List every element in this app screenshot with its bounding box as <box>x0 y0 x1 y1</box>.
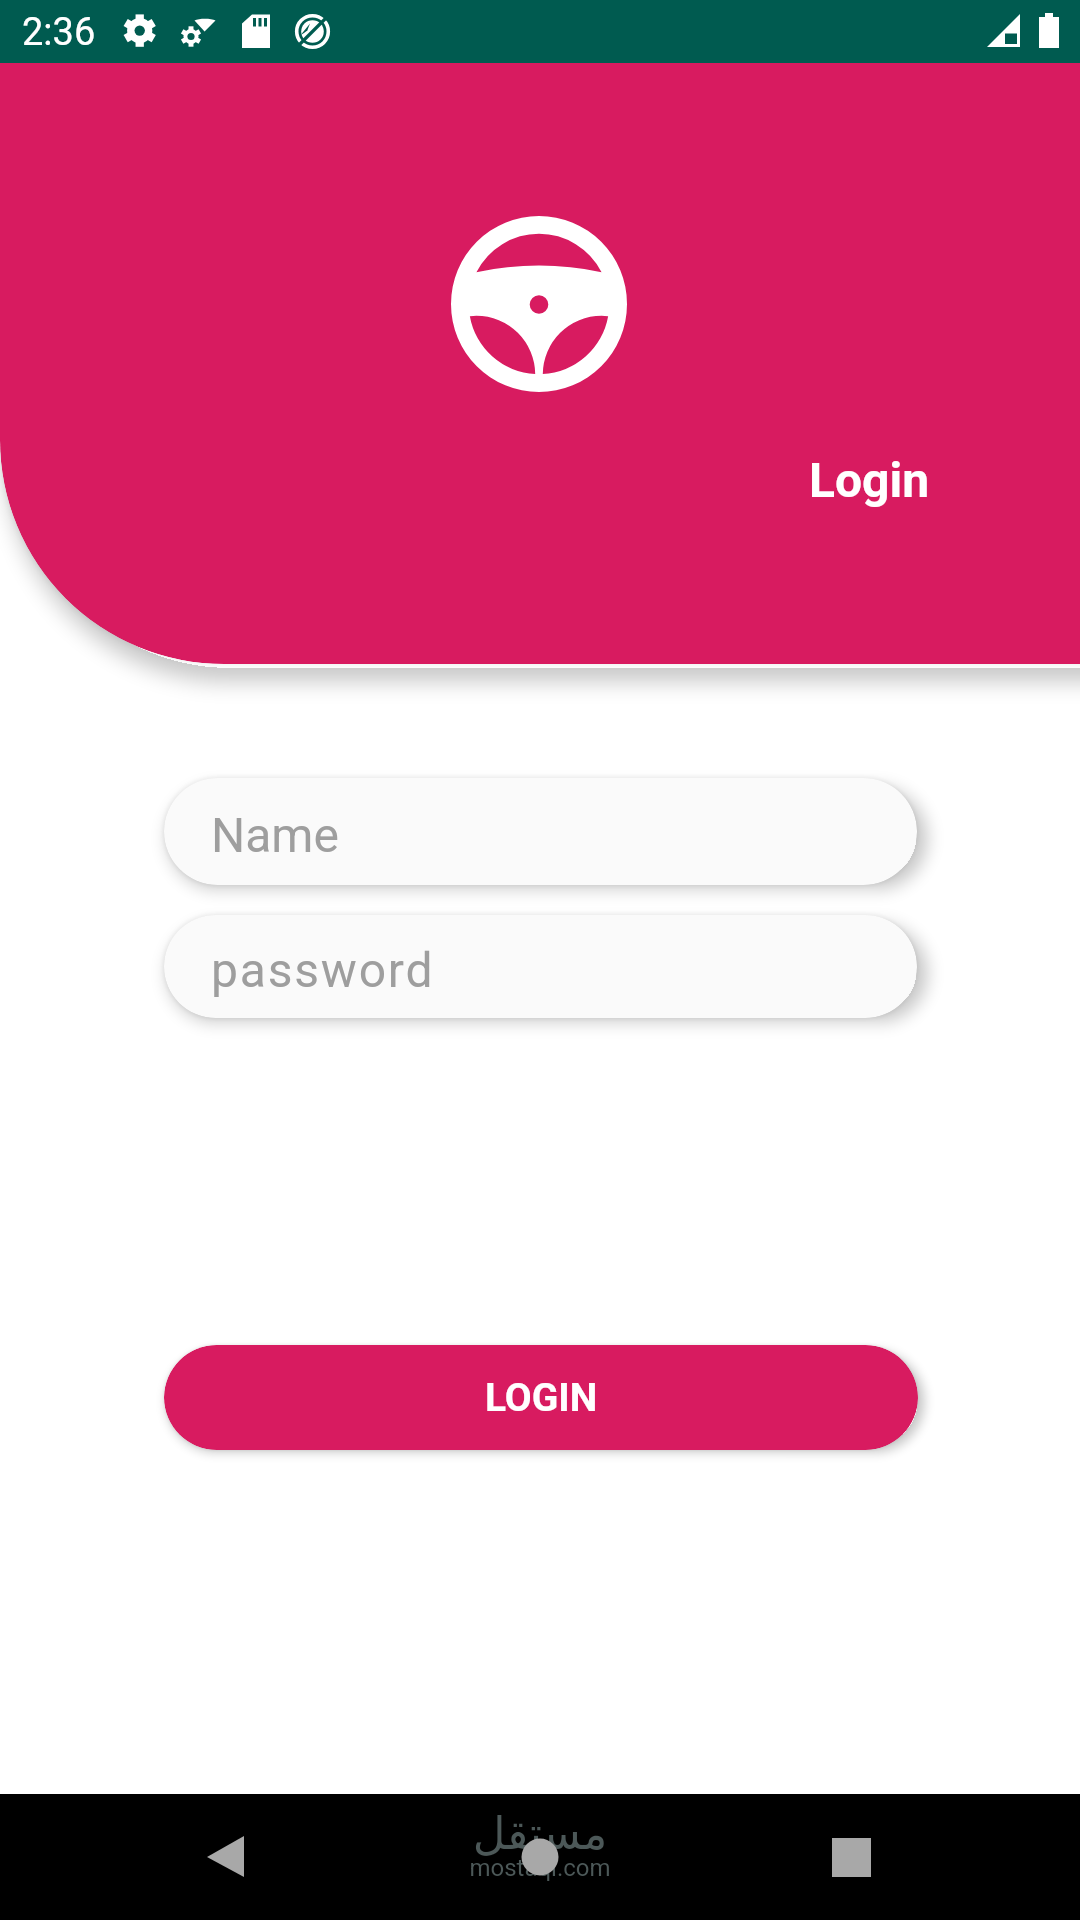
staticText: mostaql.com <box>448 1854 632 1882</box>
staticText: مستقل <box>448 1807 632 1859</box>
button[interactable]: LOGIN <box>164 1345 918 1450</box>
button[interactable]: Home <box>490 1807 590 1907</box>
staticText: Login <box>809 452 930 508</box>
button[interactable]: Name <box>164 778 917 885</box>
staticText: 2:36 <box>22 10 96 55</box>
staticText: LOGIN <box>485 1375 598 1421</box>
staticText: Name <box>211 807 339 863</box>
staticText: password <box>211 942 435 998</box>
button[interactable]: Back <box>176 1807 276 1907</box>
button[interactable]: Recent apps <box>801 1807 901 1907</box>
button[interactable]: password <box>164 915 917 1018</box>
